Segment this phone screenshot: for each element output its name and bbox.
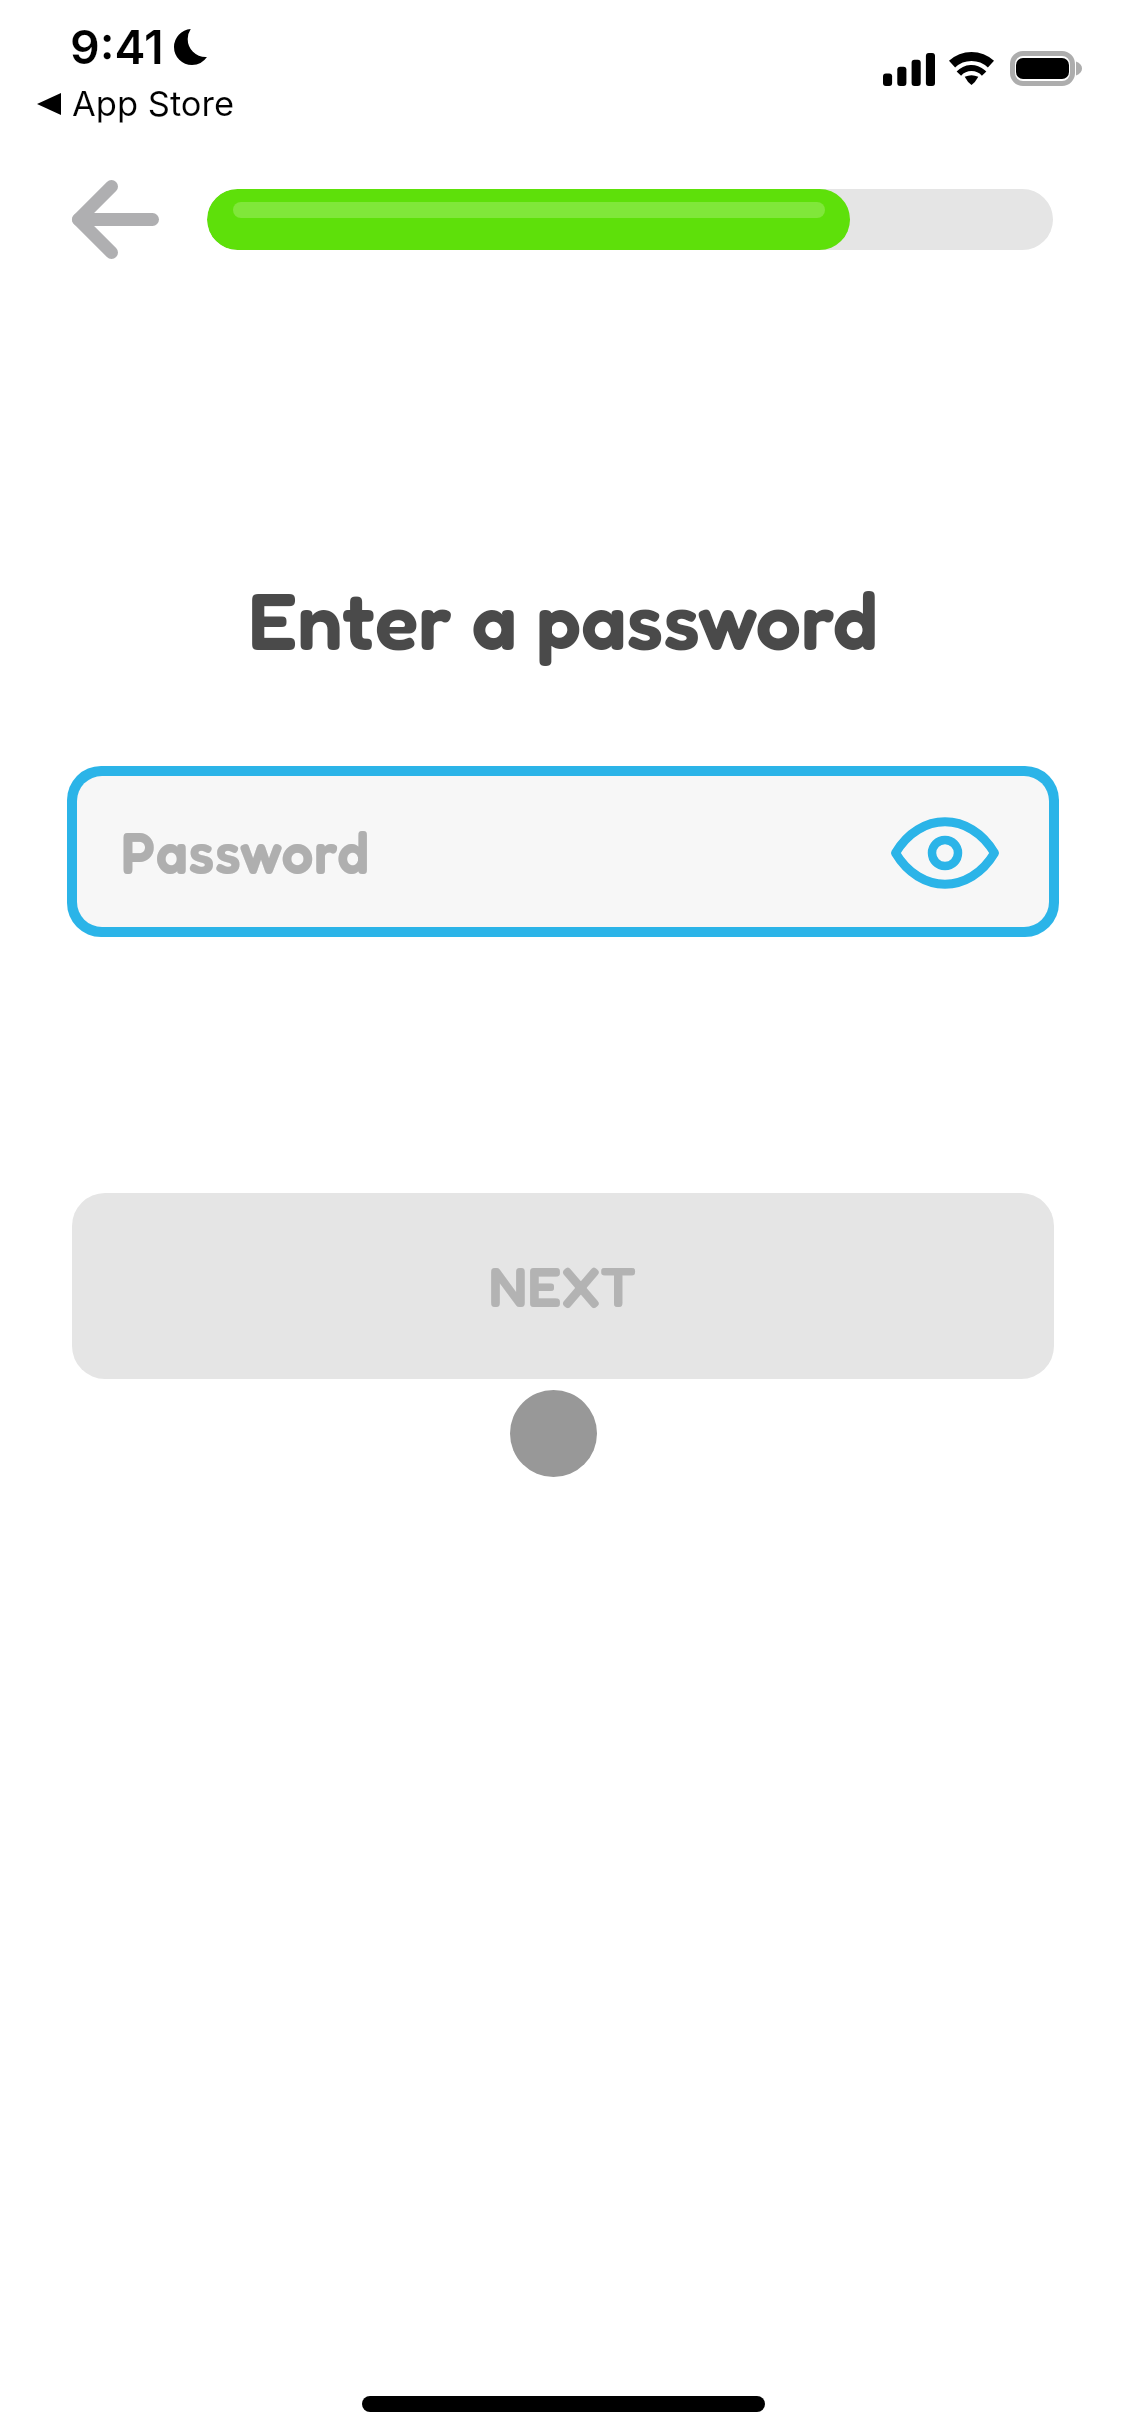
staticText: App Store <box>72 83 235 125</box>
staticText: Password <box>121 817 370 886</box>
button[interactable]: Back <box>72 180 159 259</box>
button[interactable]: NEXT <box>72 1193 1054 1379</box>
staticText: NEXT <box>489 1252 637 1320</box>
button[interactable]: Show password <box>880 805 1010 901</box>
button[interactable]: Password <box>67 766 1059 937</box>
staticText: 9:41 <box>70 19 164 75</box>
button[interactable]: App Store <box>37 83 235 125</box>
staticText: Enter a password <box>248 570 879 668</box>
